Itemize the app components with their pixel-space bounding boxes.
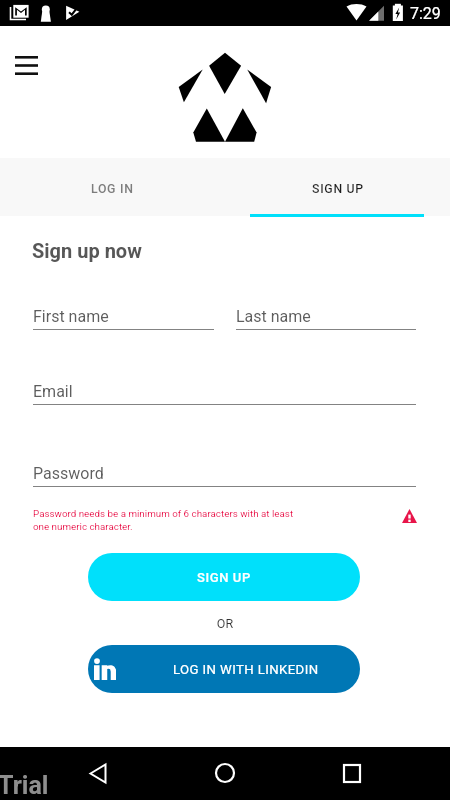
button[interactable]: SIGN UP — [88, 553, 360, 601]
button[interactable]: Email — [33, 378, 416, 405]
button[interactable]: First name — [33, 303, 214, 330]
button[interactable]: Last name — [236, 303, 416, 330]
button[interactable]: LOG IN WITH LINKEDIN — [88, 645, 360, 693]
staticText: Last name — [236, 307, 311, 326]
staticText: SIGN UP — [312, 182, 364, 196]
staticText: LOG IN WITH LINKEDIN — [173, 662, 319, 677]
staticText: SIGN UP — [197, 570, 251, 585]
button[interactable]: Back — [76, 751, 120, 795]
button[interactable]: Password — [33, 460, 416, 487]
staticText: Trial — [0, 771, 49, 800]
staticText: First name — [33, 307, 109, 326]
staticText: OR — [0, 616, 450, 631]
button[interactable]: Home — [203, 751, 247, 795]
other: Error — [402, 509, 417, 523]
button[interactable]: Menu — [4, 43, 48, 87]
staticText: LOG IN — [91, 182, 134, 196]
button[interactable]: Recents — [330, 751, 374, 795]
button[interactable]: LOG IN — [0, 158, 225, 216]
staticText: Email — [33, 382, 73, 401]
staticText: 7:29 — [410, 4, 441, 23]
staticText: Password — [33, 464, 104, 483]
button[interactable]: SIGN UP — [225, 158, 450, 216]
staticText: Password needs be a minimum of 6 charact… — [33, 508, 311, 532]
staticText: Sign up now — [32, 239, 142, 262]
